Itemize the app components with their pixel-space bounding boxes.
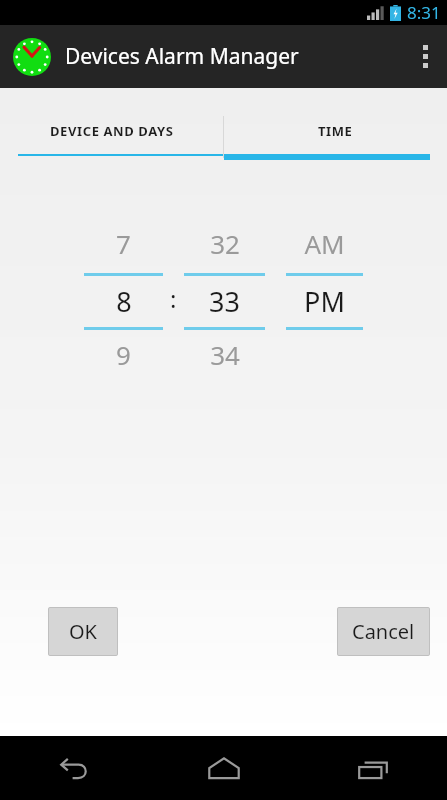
staticText: Cancel [352,618,415,645]
staticText: PM [304,283,345,320]
staticText: Devices Alarm Manager [65,42,299,71]
staticText: 7 [116,226,131,261]
button[interactable]: Home [149,736,298,800]
staticText: TIME [318,122,353,140]
staticText: AM [304,226,345,261]
button[interactable]: Back [0,736,149,800]
button[interactable]: Cancel [337,607,430,656]
button[interactable]: TIME [224,88,447,160]
button[interactable]: AM [286,219,363,378]
staticText: 8:31 [407,1,441,24]
staticText: 9 [116,337,131,372]
staticText: 34 [210,337,240,372]
staticText: 32 [210,226,240,261]
staticText: 33 [209,283,240,320]
button[interactable]: DEVICE AND DAYS [0,88,224,160]
button[interactable]: More options [403,25,447,88]
staticText: DEVICE AND DAYS [50,122,174,140]
button[interactable]: 32 [184,219,265,378]
button[interactable]: OK [48,607,118,656]
button[interactable]: Recent apps [298,736,447,800]
button[interactable]: 7 [84,219,163,378]
staticText: OK [69,618,97,645]
staticText: : [170,282,177,315]
staticText: 8 [116,283,132,320]
